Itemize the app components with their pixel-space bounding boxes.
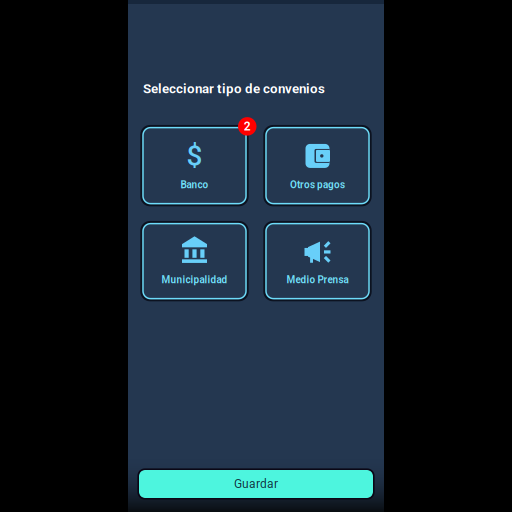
button[interactable]: Municipalidad xyxy=(143,224,246,299)
button[interactable]: $ xyxy=(143,128,246,204)
staticText: Otros pagos xyxy=(290,179,345,191)
staticText: Banco xyxy=(180,179,208,191)
staticText: Municipalidad xyxy=(161,274,227,286)
staticText: Guardar xyxy=(234,477,278,491)
button[interactable]: Otros pagos xyxy=(266,128,369,204)
staticText: $ xyxy=(186,139,202,172)
staticText: Seleccionar tipo de convenios xyxy=(143,81,325,97)
staticText: Medio Prensa xyxy=(286,274,348,286)
button[interactable]: Medio Prensa xyxy=(266,224,369,299)
button[interactable]: Guardar xyxy=(139,470,373,498)
staticText: 2 xyxy=(244,119,251,133)
